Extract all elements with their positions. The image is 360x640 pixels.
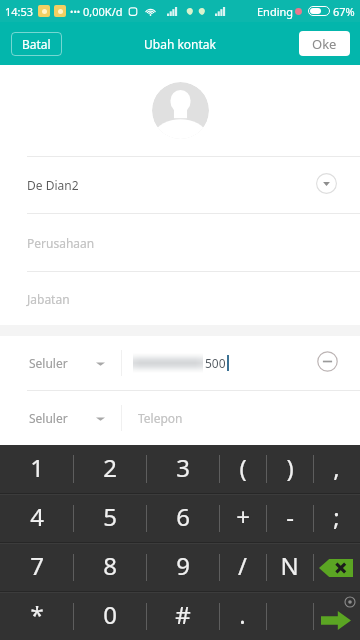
staticText: # bbox=[175, 598, 191, 631]
button[interactable]: , bbox=[313, 445, 360, 493]
button[interactable]: Jabatan bbox=[0, 272, 360, 325]
button[interactable]: 6 bbox=[146, 495, 219, 542]
button[interactable]: . bbox=[219, 593, 266, 640]
staticText: . bbox=[239, 598, 246, 631]
button[interactable]: ( bbox=[219, 445, 266, 493]
staticText: 500 bbox=[205, 355, 226, 371]
button[interactable]: Backspace bbox=[313, 544, 360, 591]
button[interactable]: Oke bbox=[299, 31, 350, 56]
staticText: 14:53 bbox=[5, 4, 34, 19]
button[interactable]: ) bbox=[266, 445, 313, 493]
staticText: 0,00K/d bbox=[83, 4, 123, 19]
staticText: 67% bbox=[333, 4, 355, 19]
staticText: Ending bbox=[257, 4, 294, 19]
button[interactable]: Batal bbox=[11, 32, 62, 56]
button[interactable]: - bbox=[266, 495, 313, 542]
staticText: - bbox=[286, 500, 294, 533]
staticText: 9 bbox=[176, 549, 190, 582]
staticText: ; bbox=[333, 500, 340, 533]
button[interactable]: Seluler bbox=[0, 336, 121, 390]
staticText: Batal bbox=[22, 36, 51, 52]
staticText: 6 bbox=[176, 500, 190, 533]
button[interactable]: 5 bbox=[73, 495, 146, 542]
staticText: Oke bbox=[312, 35, 337, 53]
staticText: Ubah kontak bbox=[144, 36, 216, 52]
staticText: 2 bbox=[103, 451, 117, 484]
staticText: Seluler bbox=[29, 410, 68, 426]
button[interactable]: 8 bbox=[73, 544, 146, 591]
button[interactable]: + bbox=[219, 495, 266, 542]
button[interactable]: 3 bbox=[146, 445, 219, 493]
staticText: 7 bbox=[30, 549, 44, 582]
button[interactable]: Expand name fields bbox=[314, 171, 338, 195]
staticText: 5 bbox=[103, 500, 117, 533]
staticText: N bbox=[280, 549, 299, 582]
button[interactable]: # bbox=[146, 593, 219, 640]
staticText: Jabatan bbox=[27, 291, 70, 307]
button[interactable]: Remove phone number bbox=[315, 336, 360, 390]
button[interactable]: De Dian2 bbox=[0, 157, 360, 213]
button[interactable]: Seluler bbox=[0, 391, 121, 445]
button[interactable]: N bbox=[266, 544, 313, 591]
button[interactable]: 7 bbox=[0, 544, 73, 591]
button[interactable]: Perusahaan bbox=[0, 214, 360, 271]
button[interactable]: 9 bbox=[146, 544, 219, 591]
staticText: 0 bbox=[103, 598, 117, 631]
button[interactable]: 4 bbox=[0, 495, 73, 542]
staticText: ••• bbox=[70, 5, 81, 17]
staticText: + bbox=[236, 500, 250, 533]
staticText: ) bbox=[286, 451, 294, 484]
button[interactable]: 1 bbox=[0, 445, 73, 493]
button[interactable]: * bbox=[0, 593, 73, 640]
staticText: , bbox=[333, 451, 340, 484]
button[interactable]: 0 bbox=[73, 593, 146, 640]
staticText: * bbox=[30, 598, 44, 631]
button[interactable] bbox=[266, 593, 313, 640]
button[interactable]: 500 bbox=[122, 336, 315, 390]
staticText: Seluler bbox=[29, 355, 68, 371]
button[interactable]: Telepon bbox=[122, 391, 315, 445]
staticText: 8 bbox=[103, 549, 117, 582]
button[interactable]: Enter bbox=[313, 593, 360, 640]
staticText: / bbox=[238, 549, 247, 582]
staticText: 3 bbox=[176, 451, 190, 484]
button[interactable]: ; bbox=[313, 495, 360, 542]
staticText: De Dian2 bbox=[27, 177, 79, 193]
staticText: Perusahaan bbox=[27, 235, 95, 251]
staticText: Telepon bbox=[138, 410, 183, 426]
staticText: ( bbox=[239, 451, 247, 484]
button[interactable]: / bbox=[219, 544, 266, 591]
button[interactable]: 2 bbox=[73, 445, 146, 493]
staticText: 1 bbox=[30, 451, 44, 484]
staticText: 4 bbox=[30, 500, 44, 533]
